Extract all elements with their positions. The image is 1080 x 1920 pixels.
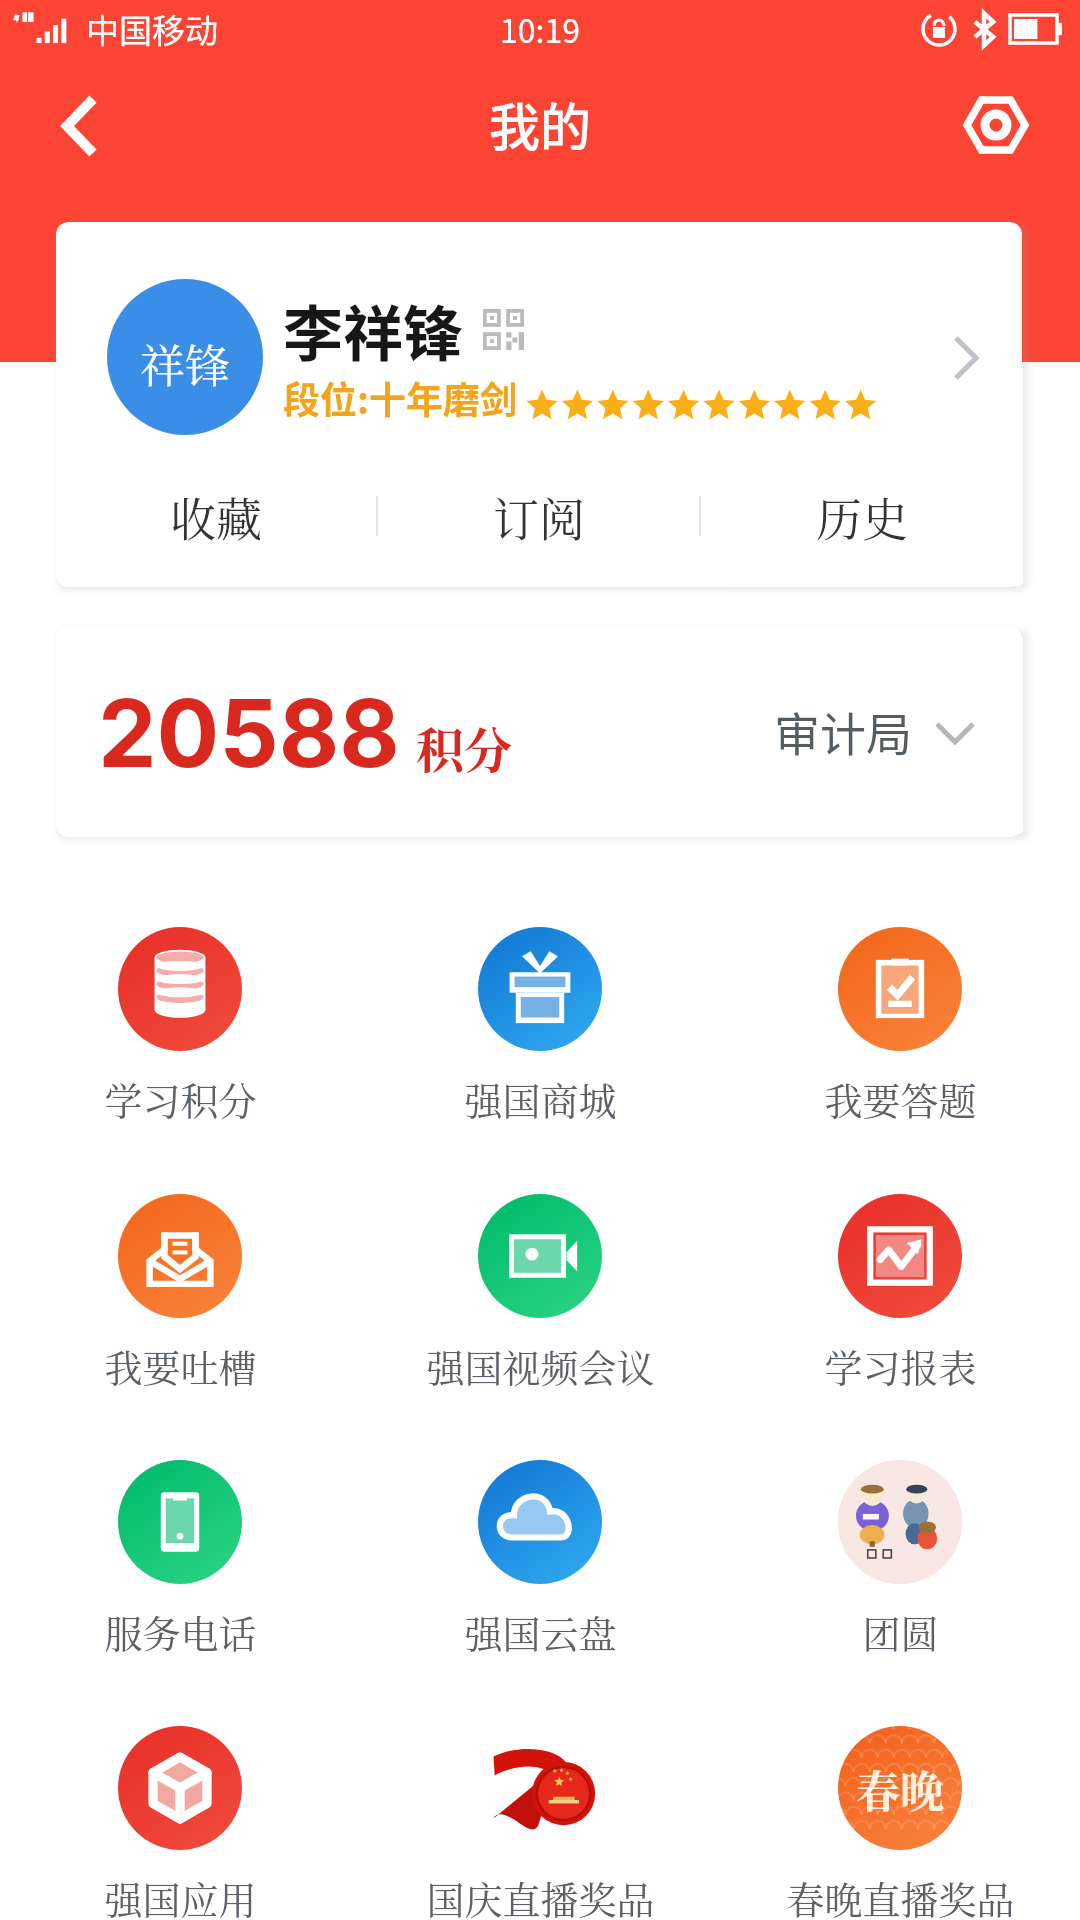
button[interactable]: 学习积分 [0, 927, 360, 1126]
button[interactable]: 服务电话 [0, 1460, 360, 1659]
staticText: 春晚 [856, 1757, 944, 1820]
button[interactable]: 强国应用 [0, 1726, 360, 1920]
button[interactable]: 历史 [701, 458, 1022, 573]
staticText: 20588 [98, 677, 400, 790]
staticText: 李祥锋 [283, 286, 463, 373]
button[interactable]: My QR code [483, 309, 524, 350]
staticText: 强国云盘 [464, 1604, 617, 1659]
button[interactable]: 强国云盘 [360, 1460, 720, 1659]
staticText: 积分 [416, 713, 513, 782]
button[interactable]: 团圆 [720, 1460, 1080, 1659]
staticText: 学习报表 [824, 1338, 977, 1393]
button[interactable]: Back [41, 87, 119, 165]
button[interactable]: Profile details [942, 334, 990, 382]
button[interactable]: Settings [952, 81, 1040, 169]
staticText: 10:19 [500, 6, 580, 52]
button[interactable]: 20588 [56, 626, 1022, 837]
staticText: 我要吐槽 [104, 1338, 257, 1393]
button[interactable]: 收藏 [56, 458, 376, 573]
staticText: 中国移动 [86, 5, 218, 53]
button[interactable]: 学习报表 [720, 1194, 1080, 1393]
button[interactable]: 强国视频会议 [360, 1194, 720, 1393]
staticText: 学习积分 [104, 1071, 257, 1126]
staticText: 祥锋 [140, 331, 231, 396]
button[interactable]: 春晚 [720, 1726, 1080, 1920]
staticText: 强国应用 [104, 1870, 257, 1920]
staticText: 我要答题 [824, 1071, 977, 1126]
staticText: 我的 [489, 87, 592, 161]
staticText: 强国商城 [464, 1071, 617, 1126]
staticText: 历史 [816, 483, 908, 549]
staticText: 团圆 [862, 1604, 939, 1659]
button[interactable]: 强国商城 [360, 927, 720, 1126]
button[interactable]: 我要吐槽 [0, 1194, 360, 1393]
staticText: 强国视频会议 [426, 1338, 655, 1393]
staticText: 审计局 [774, 698, 912, 765]
staticText: 段位:十年磨剑 [283, 371, 518, 425]
button[interactable]: Select organization [774, 698, 976, 765]
staticText: 国庆直播奖品 [426, 1870, 655, 1920]
staticText: 春晚直播奖品 [786, 1870, 1015, 1920]
button[interactable]: 订阅 [378, 458, 699, 573]
button[interactable]: 祥锋 [56, 222, 1022, 587]
staticText: 订阅 [493, 483, 585, 549]
staticText: 收藏 [170, 483, 262, 549]
button[interactable]: 我要答题 [720, 927, 1080, 1126]
button[interactable]: 国庆直播奖品 [360, 1726, 720, 1920]
staticText: 服务电话 [104, 1604, 257, 1659]
